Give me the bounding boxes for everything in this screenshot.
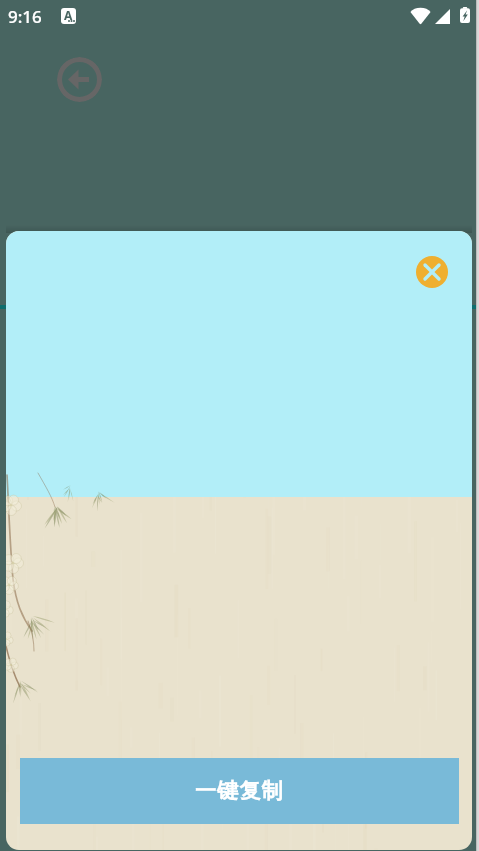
staticText: 9:16 <box>8 5 42 28</box>
staticText: 一键复制 <box>195 778 284 804</box>
button[interactable]: Close <box>416 256 448 288</box>
button[interactable]: Back <box>57 57 102 102</box>
staticText: A <box>64 8 73 23</box>
button[interactable]: 一键复制 <box>20 758 459 824</box>
